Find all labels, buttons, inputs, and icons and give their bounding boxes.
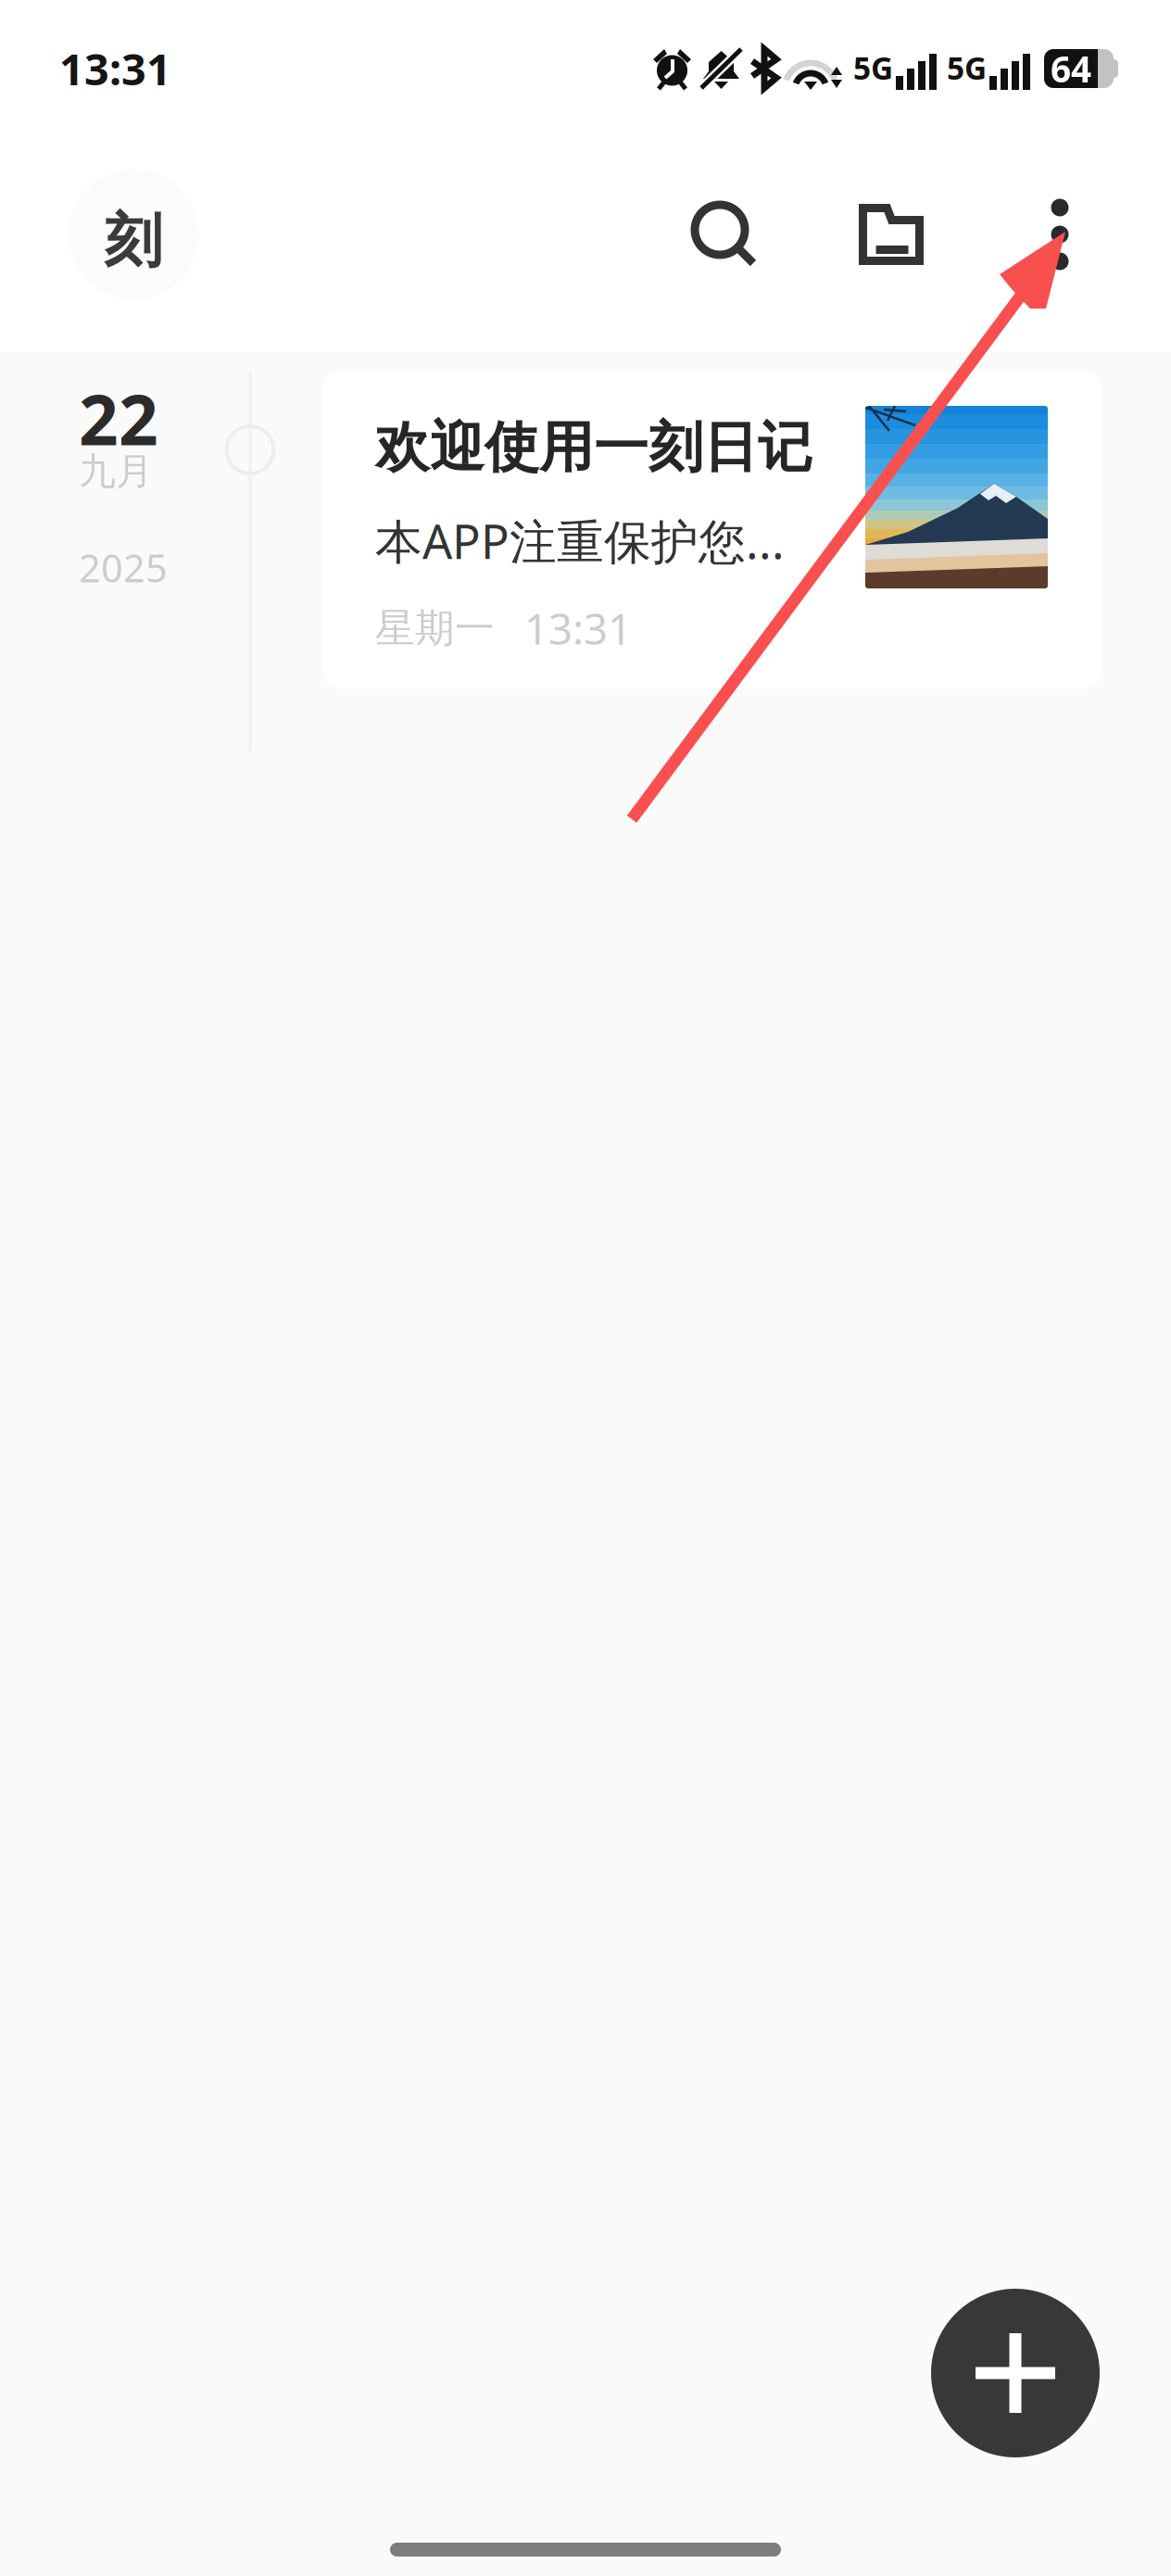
staticText: 刻: [104, 205, 163, 277]
staticText: 2025: [79, 542, 168, 593]
button[interactable]: 欢迎使用一刻日记: [322, 371, 1102, 688]
staticText: 13:31: [59, 40, 171, 97]
staticText: 欢迎使用一刻日记: [375, 414, 812, 481]
button[interactable]: 新建日记: [925, 2282, 1106, 2464]
staticText: 64: [1051, 45, 1091, 92]
button[interactable]: 一刻日记: [59, 160, 208, 309]
staticText: 5G: [853, 47, 893, 88]
button[interactable]: 搜索: [661, 171, 787, 297]
button[interactable]: 文件夹: [828, 171, 954, 297]
staticText: 本APP注重保护您...: [375, 510, 785, 572]
staticText: 5G: [947, 47, 987, 88]
staticText: 星期一: [375, 604, 495, 653]
staticText: 22: [79, 373, 158, 464]
staticText: 13:31: [524, 600, 632, 656]
button[interactable]: 更多: [1025, 171, 1095, 297]
staticText: 九月: [79, 448, 153, 494]
